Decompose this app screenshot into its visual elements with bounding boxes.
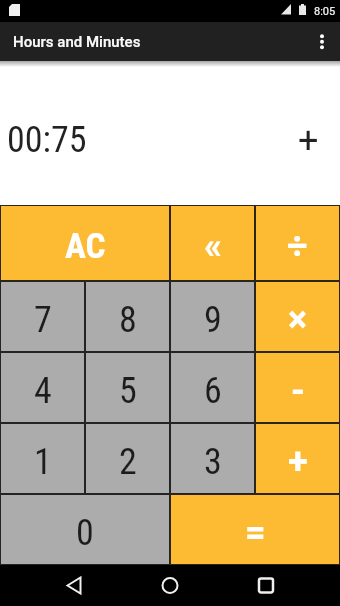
button[interactable]: - — [255, 352, 340, 423]
staticText: 00:75 — [7, 119, 87, 161]
button[interactable]: 4 — [0, 352, 85, 423]
staticText: 4 — [34, 370, 52, 412]
button[interactable]: + — [255, 423, 340, 494]
button[interactable]: 7 — [0, 281, 85, 352]
staticText: × — [288, 299, 308, 341]
button[interactable]: 5 — [85, 352, 170, 423]
staticText: = — [245, 512, 266, 554]
button[interactable]: « — [170, 205, 255, 281]
staticText: « — [204, 225, 222, 267]
button[interactable]: 1 — [0, 423, 85, 494]
staticText: 5 — [119, 370, 137, 412]
button[interactable] — [26, 565, 122, 606]
button[interactable]: AC — [0, 205, 170, 281]
button[interactable]: 8 — [85, 281, 170, 352]
staticText: + — [288, 441, 308, 483]
staticText: 3 — [204, 441, 222, 483]
button[interactable] — [218, 565, 314, 606]
staticText: 8:05 — [314, 5, 336, 18]
staticText: - — [291, 370, 305, 412]
staticText: Hours and Minutes — [13, 33, 141, 51]
button[interactable]: 2 — [85, 423, 170, 494]
staticText: 8 — [119, 299, 137, 341]
staticText: 2 — [119, 441, 137, 483]
button[interactable] — [300, 22, 340, 61]
button[interactable]: ÷ — [255, 205, 340, 281]
staticText: 7 — [34, 299, 52, 341]
staticText: 9 — [204, 299, 222, 341]
staticText: ÷ — [287, 225, 308, 267]
staticText: AC — [65, 226, 106, 267]
staticText: + — [298, 120, 319, 162]
staticText: 0 — [76, 512, 94, 554]
button[interactable]: 6 — [170, 352, 255, 423]
button[interactable]: 0 — [0, 494, 170, 565]
button[interactable]: = — [170, 494, 340, 565]
staticText: 6 — [204, 370, 222, 412]
button[interactable]: × — [255, 281, 340, 352]
button[interactable]: 3 — [170, 423, 255, 494]
button[interactable] — [122, 565, 218, 606]
button[interactable]: 9 — [170, 281, 255, 352]
staticText: 1 — [34, 441, 52, 483]
